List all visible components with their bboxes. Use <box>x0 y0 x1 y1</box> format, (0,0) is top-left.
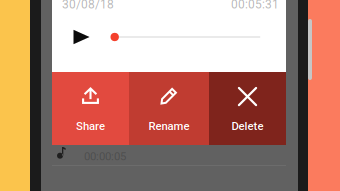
staticText: 00:05:31 <box>231 0 279 12</box>
button[interactable]: Share <box>52 72 129 145</box>
staticText: Delete <box>231 119 263 133</box>
staticText: Rename <box>148 119 189 133</box>
staticText: 00:00:05 <box>84 150 126 163</box>
staticText: 30/08/18 <box>62 0 114 12</box>
button[interactable]: Rename <box>129 72 209 145</box>
button[interactable]: Delete <box>209 72 286 145</box>
staticText: Share <box>76 119 105 133</box>
button[interactable]: Play <box>73 29 89 45</box>
